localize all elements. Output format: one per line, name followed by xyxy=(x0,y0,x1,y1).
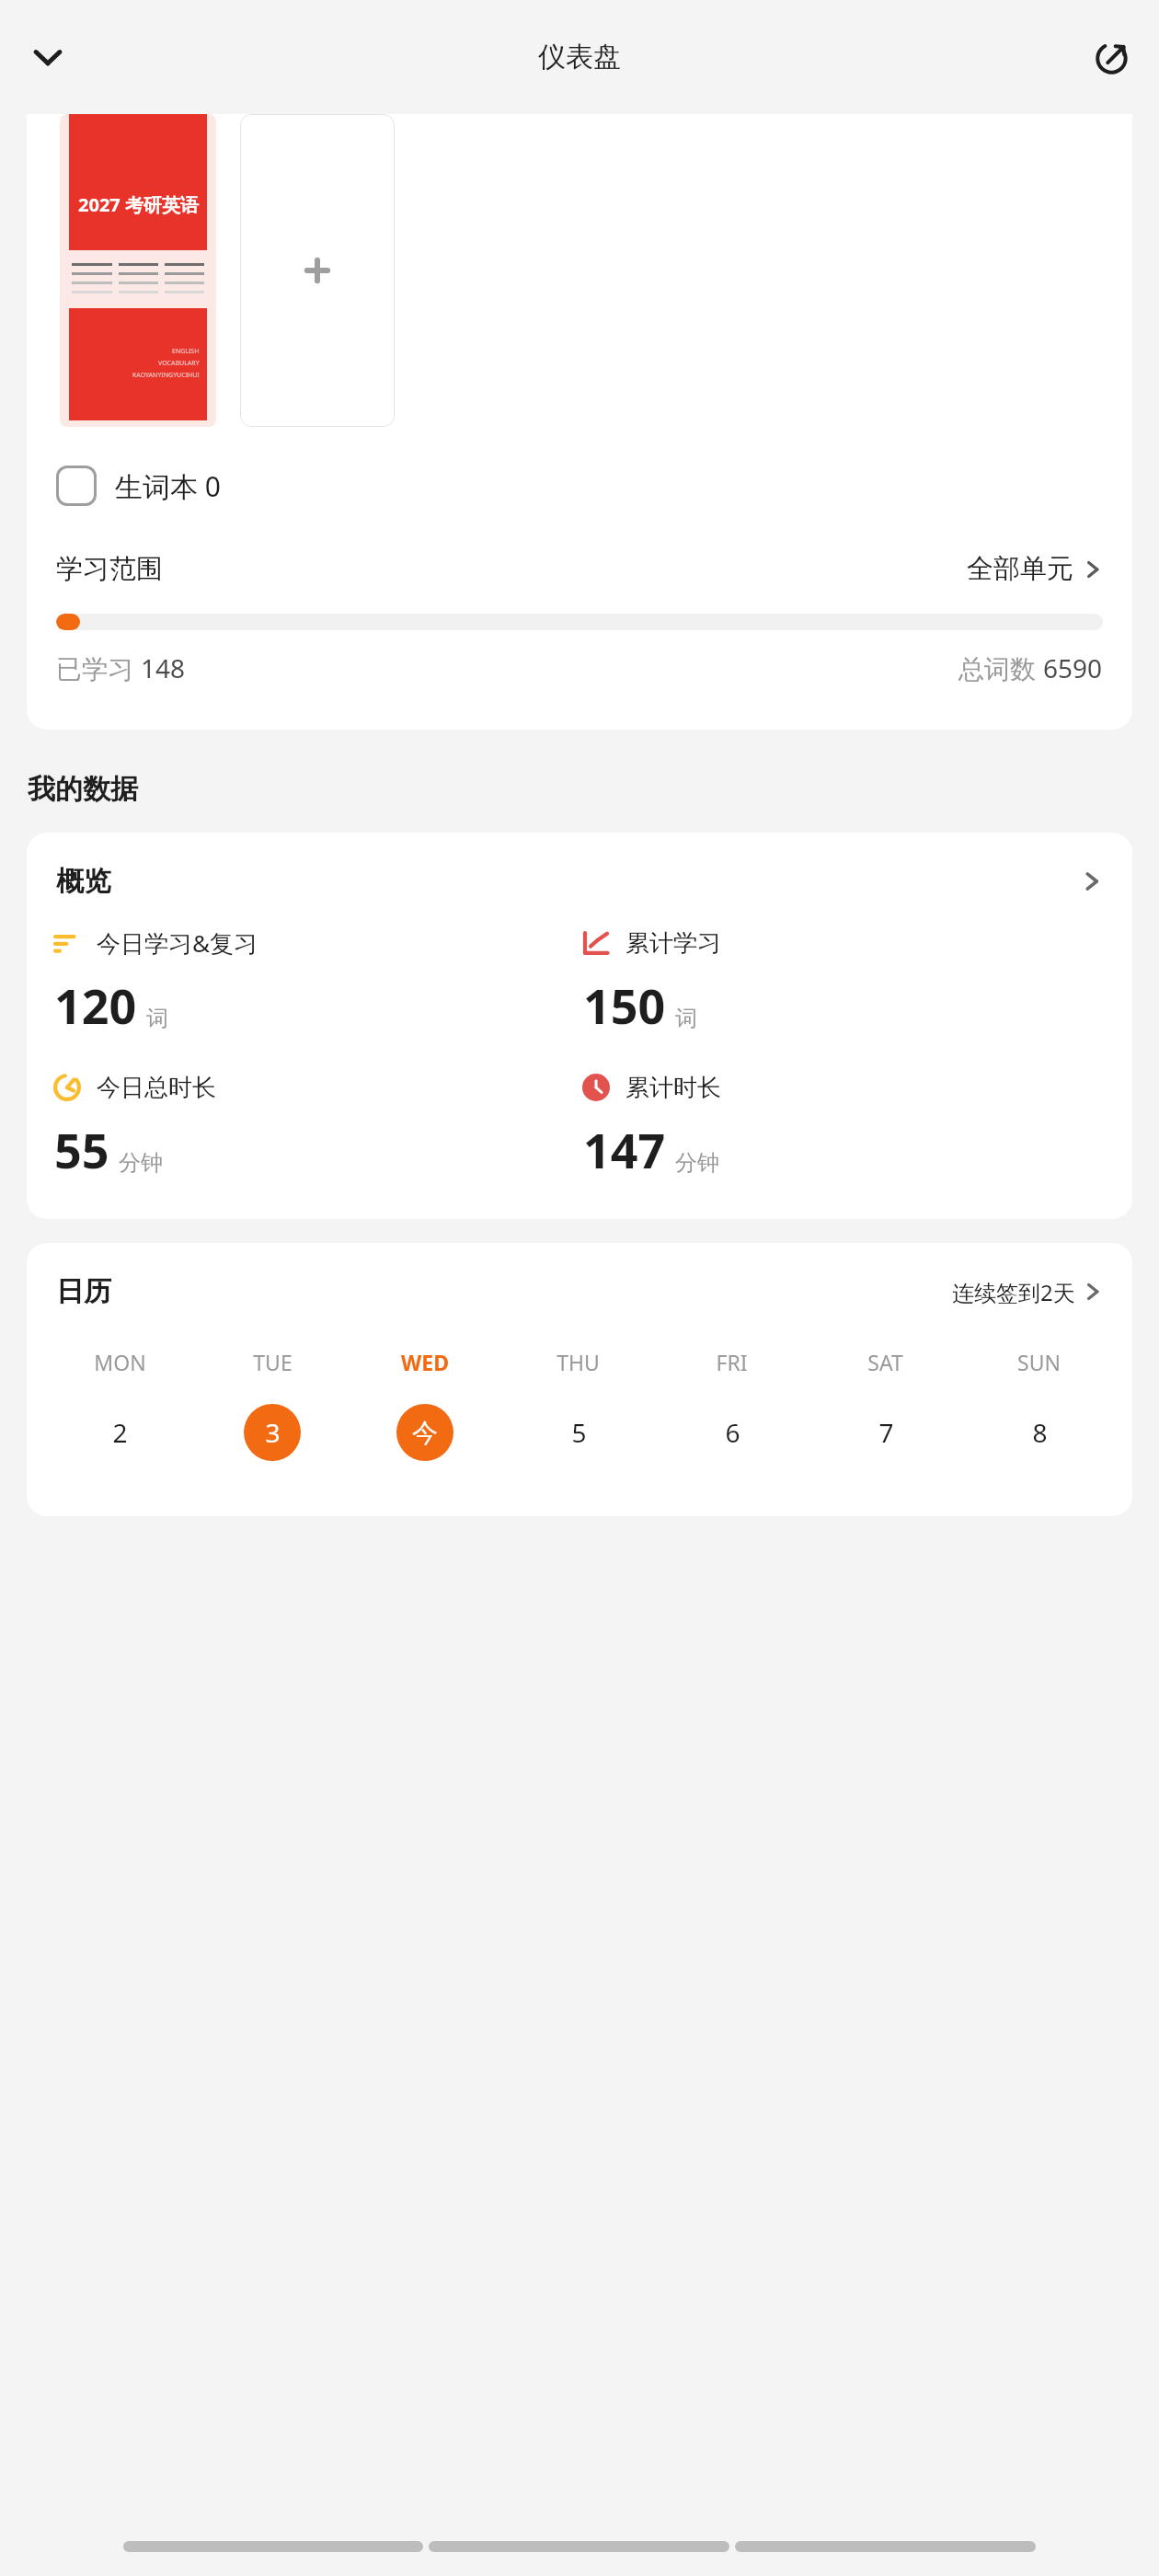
staticText: 6 xyxy=(725,1415,740,1450)
staticText: 概览 xyxy=(56,864,111,899)
staticText: 今 xyxy=(412,1417,438,1449)
button[interactable]: 3 xyxy=(244,1404,301,1461)
button[interactable]: 5 xyxy=(550,1404,607,1461)
staticText: ENGLISH xyxy=(172,347,200,356)
button[interactable]: 今日学习&复习 xyxy=(51,926,579,1038)
staticText: 词 xyxy=(675,1005,697,1032)
button[interactable]: 学习范围 xyxy=(56,552,1103,586)
staticText: VOCABULARY xyxy=(158,359,200,368)
button[interactable]: 今日总时长 xyxy=(51,1071,579,1182)
button[interactable]: 生词本 0 xyxy=(56,449,1132,523)
staticText: 累计时长 xyxy=(625,1073,721,1103)
staticText: MON xyxy=(94,1348,146,1376)
staticText: 今日总时长 xyxy=(97,1073,216,1103)
staticText: 2 xyxy=(112,1415,128,1450)
staticText: 今日学习&复习 xyxy=(97,926,258,960)
staticText: 2027 考研英语 xyxy=(78,192,199,217)
staticText: 6590 xyxy=(1043,650,1103,685)
staticText: 词 xyxy=(146,1005,168,1032)
staticText: 55 xyxy=(54,1117,109,1182)
staticText: 我的数据 xyxy=(28,772,138,807)
staticText: 总词数 xyxy=(958,650,1043,685)
button[interactable]: 6 xyxy=(704,1404,761,1461)
staticText: TUE xyxy=(253,1348,293,1376)
staticText: 分钟 xyxy=(119,1149,163,1177)
staticText: THU xyxy=(557,1348,600,1376)
staticText: 5 xyxy=(571,1415,587,1450)
staticText: KAOYANYINGYUCIHUI xyxy=(132,371,200,380)
button[interactable]: Share xyxy=(1087,31,1139,83)
staticText: 8 xyxy=(1032,1415,1048,1450)
staticText: 连续签到2天 xyxy=(952,1277,1075,1307)
button[interactable]: 2027 考研英语 xyxy=(60,114,216,427)
button[interactable]: 日历 xyxy=(56,1274,1103,1309)
staticText: 生词本 0 xyxy=(115,467,221,505)
staticText: SUN xyxy=(1017,1348,1061,1376)
button[interactable]: 8 xyxy=(1011,1404,1068,1461)
staticText: 7 xyxy=(878,1415,894,1450)
button[interactable]: Add book xyxy=(240,114,395,427)
staticText: 120 xyxy=(54,972,137,1038)
staticText: 累计学习 xyxy=(625,928,721,959)
button[interactable]: Collapse xyxy=(22,31,74,83)
staticText: SAT xyxy=(867,1348,903,1376)
button[interactable]: 累计时长 xyxy=(579,1071,1108,1182)
staticText: 150 xyxy=(583,972,666,1038)
staticText: 147 xyxy=(583,1117,666,1182)
button[interactable]: 概览 xyxy=(56,864,1103,899)
staticText: 全部单元 xyxy=(967,552,1073,586)
staticText: 3 xyxy=(265,1415,281,1450)
staticText: 学习范围 xyxy=(56,552,163,586)
staticText: 148 xyxy=(141,650,186,685)
staticText: 日历 xyxy=(56,1274,111,1309)
button[interactable]: 2 xyxy=(91,1404,148,1461)
staticText: 仪表盘 xyxy=(538,40,621,75)
staticText: WED xyxy=(401,1348,449,1376)
staticText: 已学习 xyxy=(56,650,141,685)
button[interactable]: 7 xyxy=(857,1404,914,1461)
staticText: 分钟 xyxy=(675,1149,719,1177)
button[interactable]: 累计学习 xyxy=(579,926,1108,1038)
button[interactable]: 今 xyxy=(396,1404,453,1461)
staticText: FRI xyxy=(716,1348,748,1376)
